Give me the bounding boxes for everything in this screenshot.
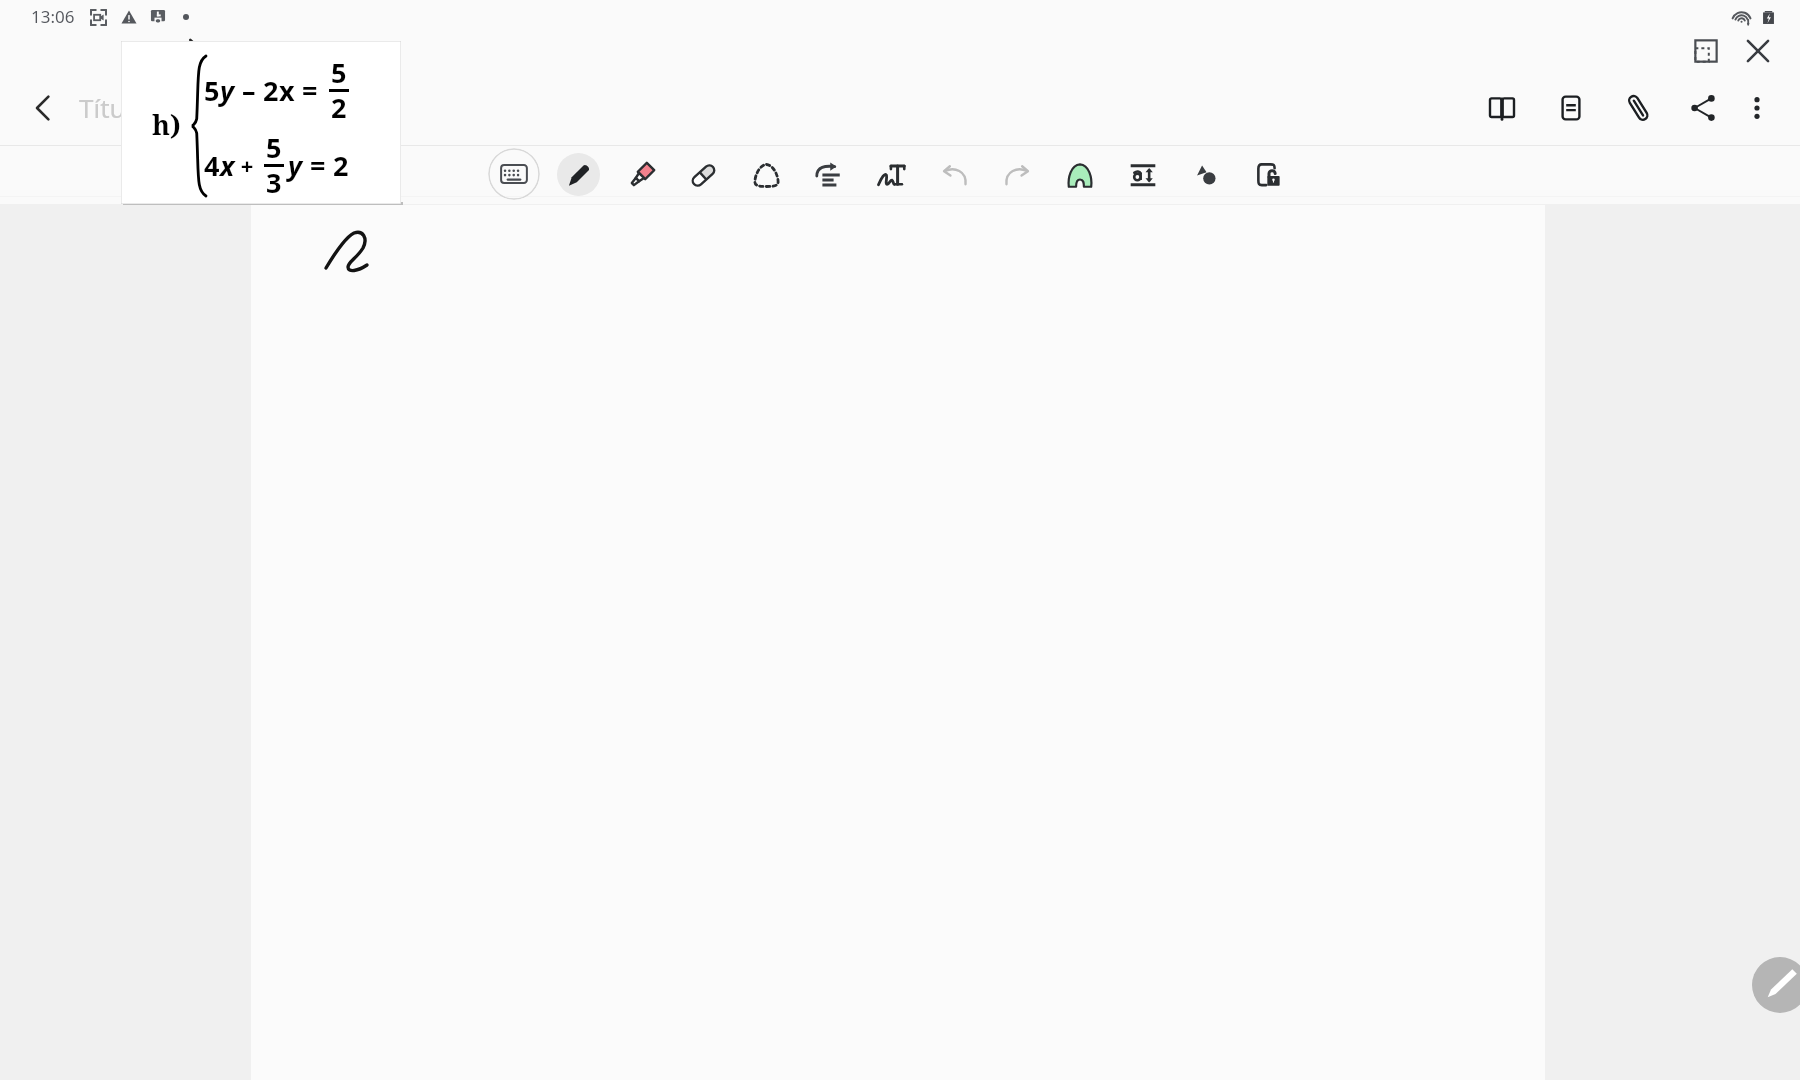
staticText: 2 <box>331 89 347 126</box>
staticText: – <box>235 72 263 109</box>
button[interactable]: Convert handwriting <box>866 150 916 200</box>
button[interactable]: Highlighter <box>616 150 666 200</box>
button[interactable]: Restore <box>1683 28 1729 74</box>
staticText: x <box>220 147 235 184</box>
staticText: + <box>235 150 260 180</box>
button[interactable]: Select <box>741 150 791 200</box>
button[interactable]: Pen <box>557 153 600 196</box>
button[interactable]: Attach <box>1612 82 1664 134</box>
staticText: y <box>220 72 235 109</box>
button[interactable]: More options <box>1734 85 1780 131</box>
staticText: h) <box>152 106 181 143</box>
button[interactable]: Close <box>1735 28 1781 74</box>
button[interactable]: Edit <box>1752 957 1800 1013</box>
staticText: 2 <box>333 147 349 184</box>
button[interactable]: Redo <box>992 150 1042 200</box>
button[interactable]: Text size <box>1118 150 1168 200</box>
button[interactable]: Lock <box>1244 150 1294 200</box>
staticText: = <box>295 72 325 109</box>
button[interactable]: Notes list <box>1545 82 1597 134</box>
button[interactable]: Undo <box>929 150 979 200</box>
staticText: 13:06 <box>31 5 75 28</box>
button[interactable]: Eraser <box>678 150 728 200</box>
button[interactable]: Keyboard <box>488 148 540 200</box>
button[interactable]: Reading mode <box>1476 82 1528 134</box>
button[interactable]: Back <box>19 84 67 132</box>
staticText: = <box>303 147 333 184</box>
staticText: x <box>279 72 295 109</box>
staticText: Título <box>79 90 149 125</box>
staticText: y <box>288 147 303 184</box>
button[interactable]: Shape recognition <box>1055 150 1105 200</box>
button[interactable]: Straighten <box>803 150 853 200</box>
button[interactable]: Share <box>1677 82 1729 134</box>
staticText: 5 <box>266 129 282 166</box>
staticText: 4 <box>204 147 220 184</box>
staticText: 2 <box>263 72 279 109</box>
staticText: 5 <box>331 54 347 91</box>
staticText: 3 <box>266 164 282 201</box>
button[interactable]: Fill color <box>1181 150 1231 200</box>
staticText: 5 <box>204 72 220 109</box>
